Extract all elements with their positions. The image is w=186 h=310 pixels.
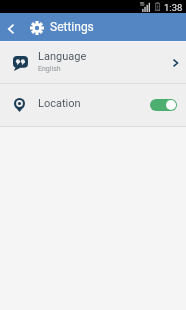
button[interactable]: Location <box>0 84 186 126</box>
staticText: Language <box>38 50 87 63</box>
staticText: Settings <box>50 20 94 34</box>
staticText: 1:38 <box>164 2 183 13</box>
button[interactable]: Location toggle <box>150 99 177 111</box>
staticText: Location <box>38 97 81 110</box>
button[interactable]: Language <box>0 41 186 83</box>
button[interactable]: Back <box>0 13 22 41</box>
staticText: English <box>38 65 61 73</box>
